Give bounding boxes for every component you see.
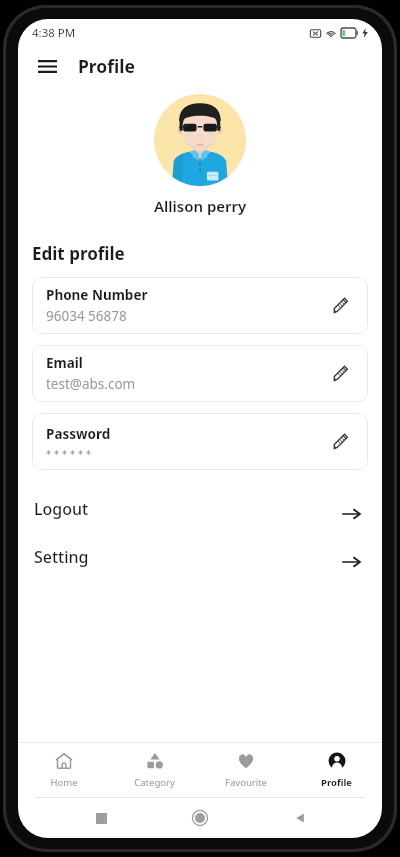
staticText: Profile [78,54,135,78]
button[interactable]: Home [183,801,217,835]
staticText: Allison perry [154,196,247,216]
staticText: Logout [34,498,336,520]
button[interactable]: Logout [32,492,368,526]
button[interactable]: Edit Email [324,357,358,391]
button[interactable]: Profile [291,746,382,794]
staticText: Favourite [225,776,267,789]
button[interactable]: Home [18,746,109,794]
button[interactable]: Edit Password [324,425,358,459]
staticText: 4:38 PM [32,25,76,41]
staticText: Edit profile [32,242,125,265]
button[interactable]: Setting [32,540,368,574]
button[interactable]: Email [32,345,368,402]
button[interactable]: Open navigation menu [32,51,62,81]
button[interactable]: Edit Phone Number [324,289,358,323]
staticText: Setting [34,546,336,568]
staticText: Password [46,425,111,443]
button[interactable]: Password [32,413,368,470]
button[interactable]: Category [109,746,200,794]
button[interactable]: Back [283,801,317,835]
button[interactable]: Favourite [200,746,291,794]
staticText: Category [134,776,175,789]
button[interactable]: Recent apps [84,801,118,835]
staticText: Phone Number [46,286,148,304]
button[interactable]: Phone Number [32,277,368,334]
button[interactable]: Profile photo [154,94,246,186]
staticText: Profile [321,776,352,789]
staticText: 96034 56878 [46,307,127,325]
staticText: Email [46,354,83,372]
staticText: Home [50,776,78,789]
staticText: test@abs.com [46,375,136,393]
